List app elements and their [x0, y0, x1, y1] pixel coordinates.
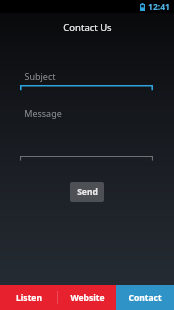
staticText: Listen — [16, 292, 42, 304]
staticText: Send — [77, 186, 98, 198]
staticText: Website — [70, 292, 105, 304]
staticText: Contact Us — [63, 21, 112, 34]
staticText: 12:41 — [148, 1, 170, 13]
button[interactable]: Send — [70, 182, 104, 202]
staticText: Subject — [24, 70, 56, 82]
button[interactable]: Listen — [0, 285, 58, 310]
staticText: Contact — [128, 292, 162, 304]
staticText: Message — [24, 107, 62, 119]
button[interactable] — [20, 85, 153, 94]
button[interactable]: Website — [58, 285, 116, 310]
button[interactable] — [20, 156, 153, 164]
other: Battery — [140, 3, 145, 11]
button[interactable]: Contact — [116, 285, 174, 310]
